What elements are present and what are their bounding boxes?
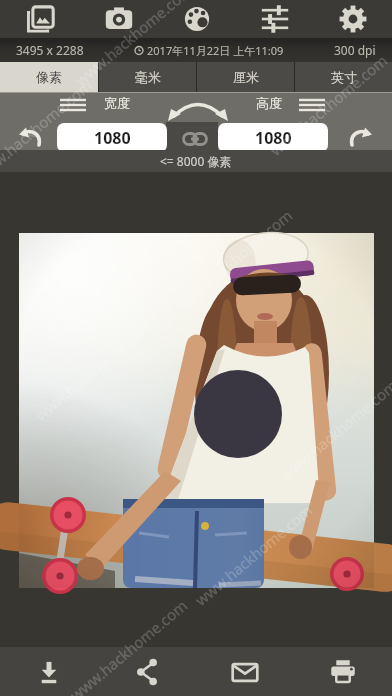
- button[interactable]: 像素: [0, 62, 98, 92]
- staticText: 1080: [94, 127, 131, 149]
- button[interactable]: [158, 0, 236, 38]
- staticText: www.hackhome.com: [191, 500, 316, 610]
- button[interactable]: [299, 98, 325, 112]
- button[interactable]: 英寸: [295, 62, 392, 92]
- staticText: <= 8000 像素: [160, 153, 232, 169]
- staticText: www.hackhome.com: [71, 0, 196, 90]
- button[interactable]: [183, 132, 207, 146]
- button[interactable]: [0, 647, 98, 696]
- staticText: 1080: [255, 127, 292, 149]
- staticText: 宽度: [104, 95, 130, 111]
- button[interactable]: [196, 647, 294, 696]
- staticText: www.hackhome.com: [266, 50, 391, 160]
- button[interactable]: [314, 0, 392, 38]
- staticText: 毫米: [135, 69, 161, 85]
- staticText: www.hackhome.com: [171, 205, 296, 315]
- staticText: 厘米: [233, 69, 259, 85]
- button[interactable]: 1080: [57, 123, 167, 152]
- staticText: 300 dpi: [334, 42, 376, 58]
- button[interactable]: [60, 98, 86, 112]
- button[interactable]: 1080: [218, 123, 328, 152]
- staticText: www.hackhome.com: [0, 75, 96, 185]
- button[interactable]: 厘米: [197, 62, 294, 92]
- staticText: www.hackhome.com: [276, 375, 392, 485]
- staticText: 英寸: [331, 69, 357, 85]
- button[interactable]: 毫米: [99, 62, 196, 92]
- button[interactable]: [0, 0, 79, 38]
- button[interactable]: [18, 124, 42, 148]
- button[interactable]: [79, 0, 158, 38]
- staticText: www.hackhome.com: [31, 315, 156, 425]
- staticText: 2017年11月22日 上午11:09: [147, 43, 284, 58]
- button[interactable]: [167, 101, 229, 123]
- staticText: www.hackhome.com: [66, 595, 191, 696]
- button[interactable]: [19, 233, 374, 588]
- staticText: 3495 x 2288: [16, 42, 84, 58]
- staticText: 高度: [256, 95, 282, 111]
- button[interactable]: [98, 647, 196, 696]
- button[interactable]: [294, 647, 392, 696]
- button[interactable]: [236, 0, 314, 38]
- button[interactable]: [349, 124, 373, 148]
- staticText: 像素: [36, 69, 62, 85]
